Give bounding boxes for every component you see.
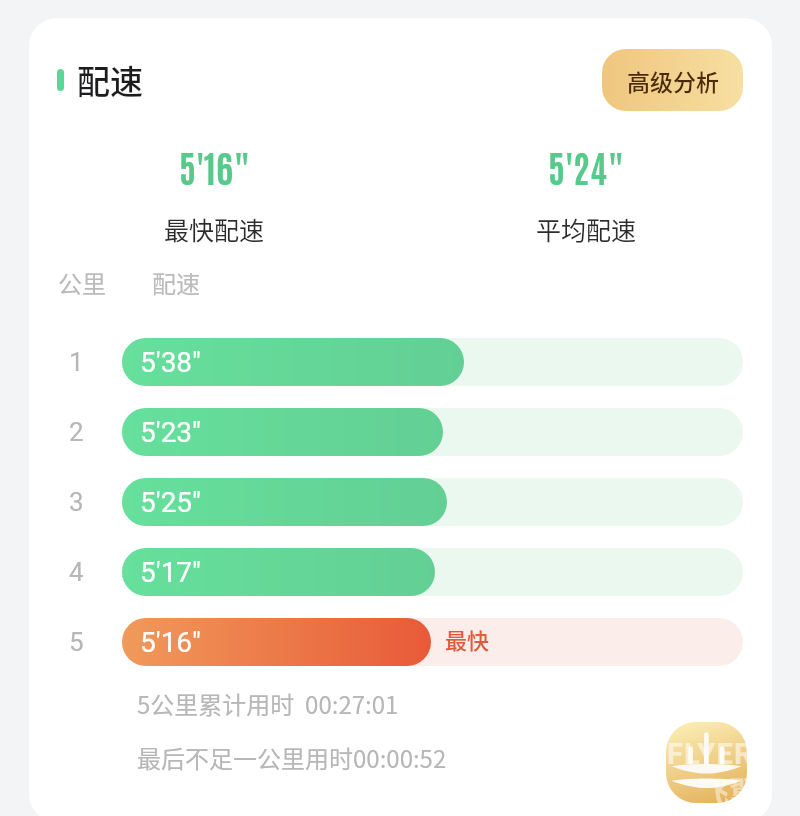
staticText: 配速: [77, 56, 143, 104]
staticText: 5: [69, 627, 84, 657]
staticText: 平均配速: [536, 211, 637, 247]
staticText: 最后不足一公里用时00:00:52: [137, 740, 447, 775]
button[interactable]: 5'16": [29, 142, 400, 247]
button[interactable]: 4: [29, 548, 772, 596]
staticText: 1: [69, 347, 84, 377]
staticText: 5'23": [140, 416, 202, 449]
staticText: 4: [69, 557, 84, 587]
button[interactable]: 1: [29, 338, 772, 386]
button[interactable]: 配速: [57, 56, 143, 104]
button[interactable]: 高级分析: [602, 49, 743, 111]
staticText: 5'24": [548, 142, 625, 190]
staticText: 高级分析: [627, 64, 719, 97]
button[interactable]: 2: [29, 408, 772, 456]
staticText: 5'38": [140, 346, 202, 379]
staticText: 5公里累计用时 00:27:01: [137, 686, 399, 721]
button[interactable]: 3: [29, 478, 772, 526]
staticText: 3: [69, 487, 84, 517]
staticText: 2: [69, 417, 84, 447]
staticText: 5'16": [179, 142, 251, 190]
button[interactable]: 5'24": [400, 142, 772, 247]
staticText: 最快配速: [164, 211, 265, 247]
staticText: 公里: [58, 265, 106, 300]
staticText: 最快: [445, 623, 490, 655]
staticText: 5'25": [140, 486, 202, 519]
other: App logo: [666, 722, 747, 803]
staticText: 5'16": [140, 626, 202, 659]
staticText: FLYERT: [667, 737, 773, 771]
button[interactable]: 5: [29, 618, 772, 666]
staticText: 配速: [152, 265, 200, 300]
staticText: 5'17": [140, 556, 202, 589]
staticText: 飞翼: [698, 768, 760, 813]
